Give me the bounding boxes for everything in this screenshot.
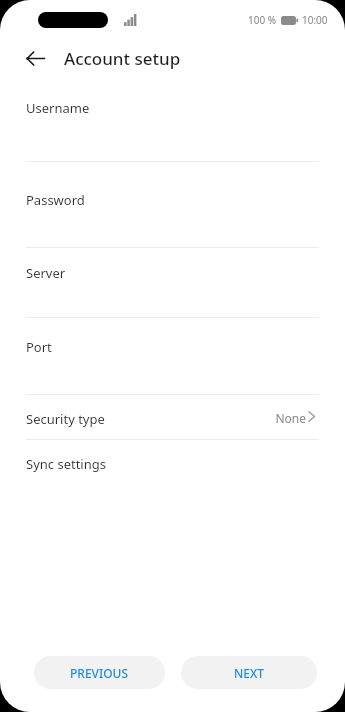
staticText: Username [26, 99, 90, 117]
button[interactable] [26, 90, 319, 161]
staticText: Server [26, 264, 66, 282]
button[interactable] [26, 395, 319, 439]
staticText: Account setup [64, 47, 181, 70]
staticText: Port [26, 338, 52, 356]
staticText: None [275, 410, 306, 426]
button[interactable]: NEXT [181, 656, 317, 689]
staticText: Sync settings [26, 455, 106, 473]
button[interactable]: PREVIOUS [34, 656, 165, 689]
staticText: PREVIOUS [70, 665, 129, 681]
button[interactable] [26, 248, 319, 317]
staticText: Password [26, 191, 85, 209]
button[interactable]: Back [20, 43, 50, 73]
button[interactable] [26, 440, 319, 484]
staticText: NEXT [234, 665, 265, 681]
staticText: 100 % [248, 13, 277, 27]
button[interactable] [26, 318, 319, 394]
staticText: 10:00 [302, 13, 328, 27]
button[interactable] [26, 162, 319, 247]
staticText: Security type [26, 410, 105, 428]
